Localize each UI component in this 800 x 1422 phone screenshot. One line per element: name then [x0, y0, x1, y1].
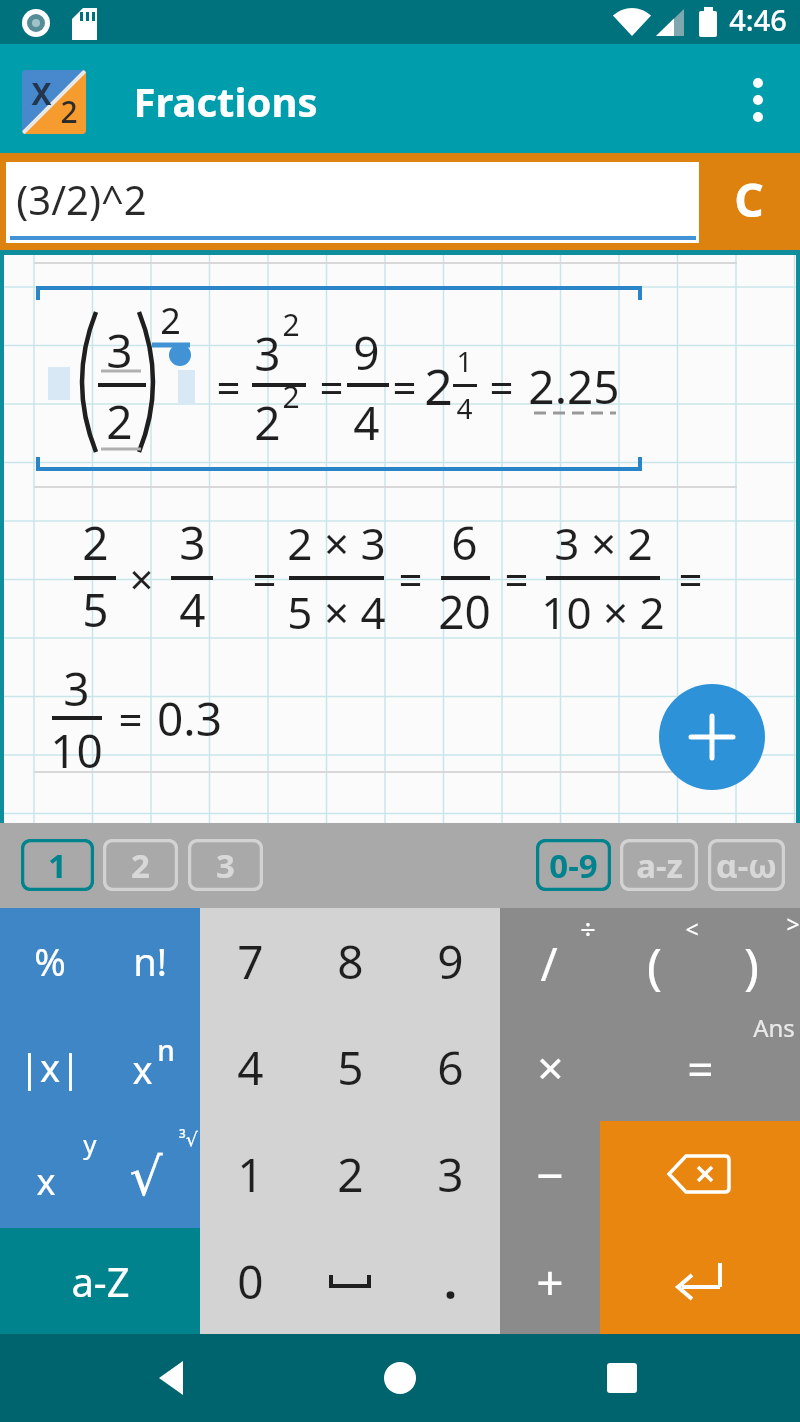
staticText: x	[36, 1157, 56, 1206]
staticText: 2	[424, 352, 453, 420]
staticText: /	[540, 932, 558, 995]
staticText: ³√	[179, 1126, 198, 1152]
staticText: 7	[237, 930, 264, 993]
staticText: 1	[48, 843, 67, 888]
staticText: =	[489, 358, 514, 415]
staticText: +	[536, 1249, 564, 1314]
staticText: 2	[254, 391, 281, 454]
staticText: .	[444, 1250, 457, 1313]
staticText: −	[536, 1142, 564, 1207]
staticText: Ans	[753, 1011, 795, 1044]
staticText: 2.25	[528, 355, 620, 418]
button[interactable]	[590, 1346, 654, 1410]
staticText: 4	[456, 389, 473, 427]
button[interactable]: 7	[200, 908, 300, 1014]
button[interactable]: 3	[400, 1121, 500, 1227]
button[interactable]: a-Z	[0, 1228, 200, 1334]
staticText: 10 × 2	[541, 582, 665, 642]
staticText: 6	[451, 511, 478, 574]
staticText: ×	[537, 1036, 564, 1099]
button[interactable]: )	[700, 908, 800, 1014]
staticText: 5 × 4	[287, 582, 386, 642]
staticText: 5	[82, 578, 109, 641]
staticText: 2	[282, 304, 300, 345]
staticText: 2 × 3	[287, 513, 386, 573]
staticText: α-ω	[716, 843, 777, 888]
staticText: %	[34, 935, 66, 987]
staticText: =	[216, 358, 241, 415]
button[interactable]: 2	[300, 1121, 400, 1227]
button[interactable]	[732, 74, 784, 126]
button[interactable]	[300, 1228, 400, 1334]
staticText: 4	[237, 1036, 264, 1099]
button[interactable]: C	[699, 153, 800, 250]
button[interactable]: n!	[100, 908, 200, 1014]
button[interactable]: 9	[400, 908, 500, 1014]
staticText: (3/2)^2	[16, 172, 147, 226]
button[interactable]: =	[600, 1014, 800, 1120]
staticText: 1	[237, 1143, 264, 1206]
button[interactable]: (3/2)^2	[6, 162, 699, 243]
staticText: 2	[160, 296, 181, 345]
staticText: 4:46	[729, 0, 787, 39]
staticText: 9	[353, 321, 380, 384]
button[interactable]: X	[22, 70, 86, 134]
staticText: 2	[106, 390, 133, 453]
button[interactable]: (	[600, 908, 700, 1014]
staticText: 1	[456, 342, 473, 380]
button[interactable]: −	[500, 1121, 600, 1227]
staticText: =	[319, 358, 344, 415]
staticText: 2	[60, 91, 78, 132]
staticText: 6	[437, 1036, 464, 1099]
button[interactable]: 4	[200, 1014, 300, 1120]
staticText: 3	[437, 1143, 464, 1206]
button[interactable]	[140, 1346, 204, 1410]
button[interactable]	[659, 684, 765, 790]
staticText: =	[504, 550, 529, 607]
button[interactable]: α-ω	[708, 839, 785, 891]
staticText: 0.3	[157, 687, 222, 750]
staticText: 8	[337, 930, 364, 993]
button[interactable]: 0	[200, 1228, 300, 1334]
staticText: ×	[129, 550, 154, 607]
staticText: 10	[50, 719, 103, 782]
button[interactable]: +	[500, 1228, 600, 1334]
button[interactable]: %	[0, 908, 100, 1014]
button[interactable]: 8	[300, 908, 400, 1014]
button[interactable]: |x|	[0, 1014, 100, 1120]
staticText: Fractions	[133, 74, 318, 128]
staticText: =	[398, 550, 423, 607]
button[interactable]: 0-9	[536, 839, 611, 891]
staticText: =	[118, 690, 143, 747]
button[interactable]: .	[400, 1228, 500, 1334]
staticText: √	[129, 1147, 163, 1208]
staticText: 2	[131, 843, 150, 888]
button[interactable]: x	[100, 1014, 200, 1120]
staticText: )	[744, 931, 759, 999]
staticText: 3	[216, 843, 235, 888]
staticText: 0	[237, 1250, 264, 1313]
button[interactable]	[600, 1228, 800, 1334]
staticText: =	[687, 1037, 714, 1100]
staticText: 0-9	[549, 843, 598, 888]
staticText: a-Z	[71, 1254, 130, 1308]
button[interactable]	[600, 1121, 800, 1227]
button[interactable]: ×	[500, 1014, 600, 1120]
staticText: (	[647, 931, 662, 999]
button[interactable]: a-z	[620, 839, 698, 891]
button[interactable]: 6	[400, 1014, 500, 1120]
button[interactable]: 1	[200, 1121, 300, 1227]
button[interactable]: 3	[188, 839, 263, 891]
button[interactable]: 2	[103, 839, 178, 891]
staticText: x	[132, 1043, 153, 1095]
staticText: 3	[179, 511, 206, 574]
staticText: n	[157, 1031, 175, 1069]
button[interactable]: 5	[300, 1014, 400, 1120]
button[interactable]: √	[100, 1121, 200, 1227]
button[interactable]: /	[500, 908, 600, 1014]
staticText: X	[31, 73, 52, 114]
staticText: 5	[337, 1036, 364, 1099]
button[interactable]: x	[0, 1121, 100, 1227]
button[interactable]: 1	[21, 839, 94, 891]
button[interactable]	[368, 1346, 432, 1410]
